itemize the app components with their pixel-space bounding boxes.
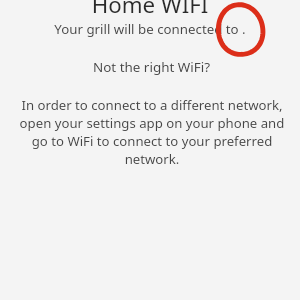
staticText: Home WIFI [10,0,290,19]
other: Highlighted network name [214,0,268,60]
staticText: Your grill will be connected to . [10,20,290,38]
staticText: In order to connect to a different netwo… [14,96,290,168]
button[interactable]: Not the right WiFi? [0,0,300,18]
